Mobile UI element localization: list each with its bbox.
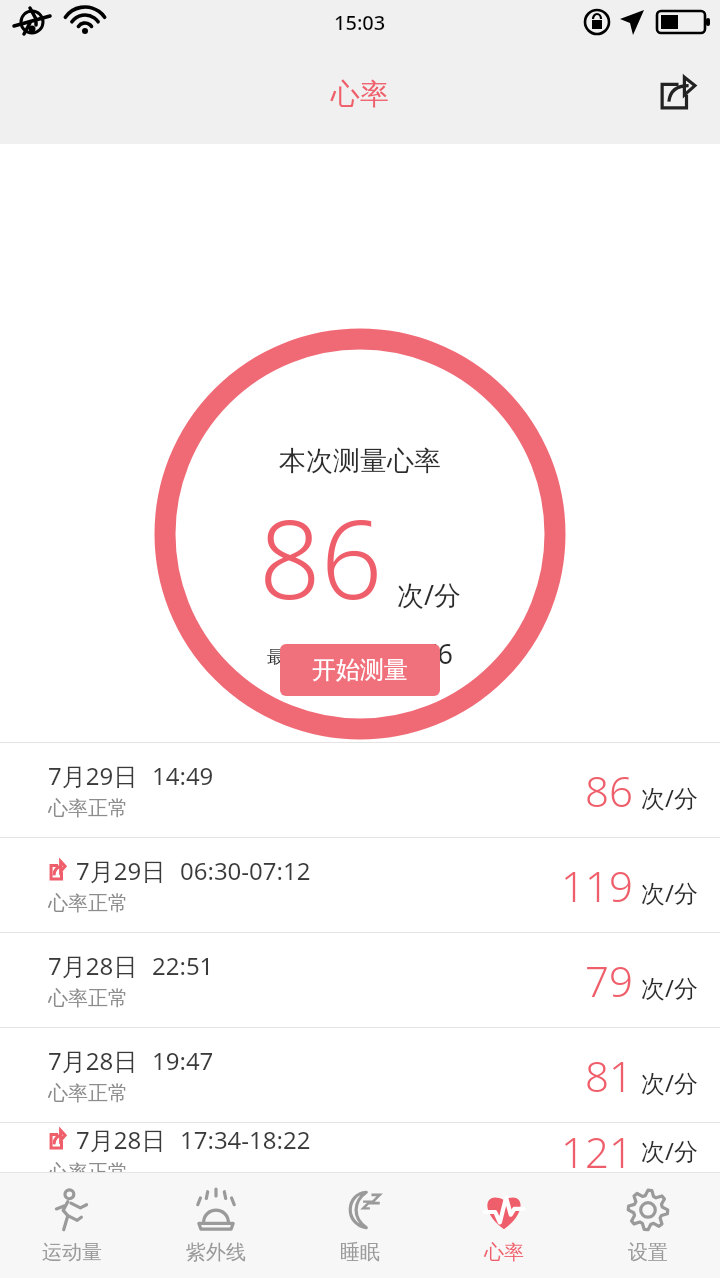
staticText: 心率 — [484, 1240, 524, 1265]
button[interactable]: 7月28日 — [0, 1123, 720, 1172]
staticText: 次/分 — [641, 1066, 698, 1099]
button[interactable]: 睡眠 — [288, 1173, 432, 1278]
staticText: 心率正常 — [48, 1160, 128, 1172]
staticText: 次/分 — [641, 781, 698, 814]
button[interactable]: Share — [648, 66, 704, 122]
staticText: 设置 — [628, 1240, 668, 1265]
staticText: 7月28日 — [48, 949, 138, 982]
staticText: 心率 — [331, 76, 389, 113]
staticText: 19:47 — [152, 1044, 214, 1077]
staticText: 119 — [561, 857, 633, 914]
staticText: 79 — [585, 952, 633, 1009]
staticText: 心率正常 — [48, 986, 128, 1011]
button[interactable]: 心率 — [432, 1173, 576, 1278]
staticText: 心率正常 — [48, 891, 128, 916]
staticText: 7月28日 — [76, 1123, 166, 1156]
staticText: 7月28日 — [48, 1044, 138, 1077]
staticText: 17:34-18:22 — [180, 1123, 311, 1156]
staticText: 22:51 — [152, 949, 214, 982]
staticText: 心率正常 — [48, 1081, 128, 1106]
staticText: 110 — [303, 635, 350, 672]
staticText: 睡眠 — [340, 1240, 380, 1265]
staticText: 81 — [585, 1047, 633, 1104]
button[interactable]: 7月29日 — [0, 743, 720, 837]
staticText: 06:30-07:12 — [180, 854, 311, 887]
staticText: 最慢 — [386, 646, 422, 669]
button[interactable]: 7月29日 — [0, 838, 720, 932]
staticText: 14:49 — [152, 759, 214, 792]
button[interactable]: 设置 — [576, 1173, 720, 1278]
staticText: 本次测量心率 — [279, 444, 441, 478]
staticText: 7月29日 — [48, 759, 138, 792]
staticText: 次/分 — [641, 971, 698, 1004]
staticText: 15:03 — [334, 9, 386, 36]
staticText: 运动量 — [42, 1240, 102, 1265]
staticText: 76 — [422, 635, 453, 672]
staticText: 121 — [561, 1123, 633, 1172]
staticText: 紫外线 — [186, 1240, 246, 1265]
button[interactable]: 开始测量 — [280, 644, 440, 696]
staticText: 7月29日 — [76, 854, 166, 887]
staticText: 最快 — [267, 646, 303, 669]
button[interactable]: 运动量 — [0, 1173, 144, 1278]
staticText: 心率正常 — [48, 796, 128, 821]
staticText: 开始测量 — [312, 655, 408, 685]
staticText: 86 — [259, 484, 383, 631]
staticText: 次/分 — [641, 1134, 698, 1167]
staticText: 次/分 — [641, 876, 698, 909]
button[interactable]: 紫外线 — [144, 1173, 288, 1278]
staticText: 次/分 — [397, 576, 462, 613]
staticText: ｜ — [356, 642, 380, 672]
staticText: 86 — [585, 762, 633, 819]
button[interactable]: 7月28日 — [0, 933, 720, 1027]
button[interactable]: 7月28日 — [0, 1028, 720, 1122]
